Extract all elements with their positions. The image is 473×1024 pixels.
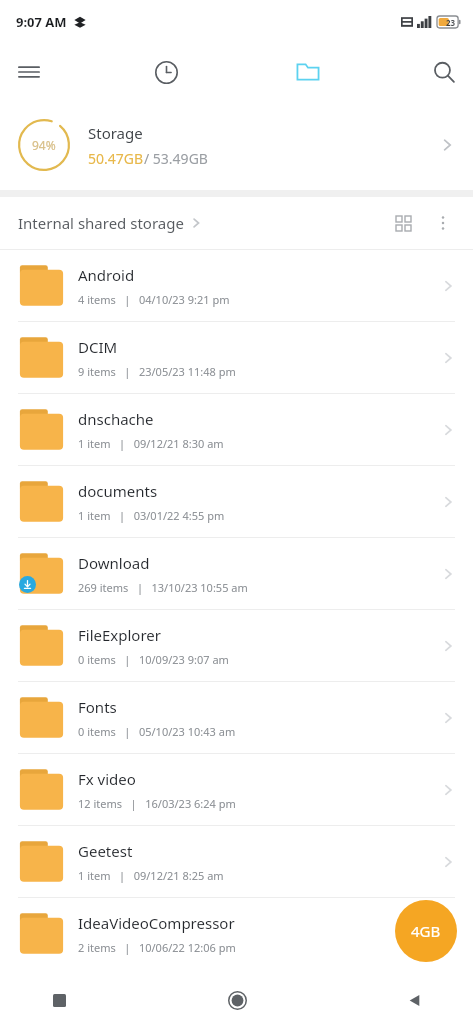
staticText: 1 item | 03/01/22 4:55 pm bbox=[78, 508, 225, 523]
staticText: Storage bbox=[88, 123, 143, 143]
button[interactable]: documents bbox=[0, 466, 473, 537]
staticText: Android bbox=[78, 265, 135, 285]
button[interactable]: Android bbox=[0, 250, 473, 321]
button[interactable]: DCIM bbox=[0, 322, 473, 393]
button[interactable]: IdeaVideoCompressor bbox=[0, 898, 473, 969]
staticText: 1 item | 09/12/21 8:30 am bbox=[78, 436, 224, 451]
staticText: Internal shared storage bbox=[18, 213, 184, 233]
staticText: DCIM bbox=[78, 337, 118, 357]
button[interactable]: More options bbox=[423, 203, 463, 243]
staticText: 23 bbox=[446, 17, 456, 28]
button[interactable]: Home bbox=[214, 977, 260, 1023]
staticText: 94% bbox=[32, 137, 56, 153]
button[interactable]: Fx video bbox=[0, 754, 473, 825]
button[interactable]: Geetest bbox=[0, 826, 473, 897]
staticText: IdeaVideoCompressor bbox=[78, 913, 235, 933]
staticText: 2 items | 10/06/22 12:06 pm bbox=[78, 940, 236, 955]
staticText: 1 item | 09/12/21 8:25 am bbox=[78, 868, 224, 883]
staticText: 12 items | 16/03/23 6:24 pm bbox=[78, 796, 236, 811]
staticText: Download bbox=[78, 553, 150, 573]
staticText: documents bbox=[78, 481, 158, 501]
staticText: Fonts bbox=[78, 697, 117, 717]
button[interactable]: dnschache bbox=[0, 394, 473, 465]
button[interactable]: Menu bbox=[8, 51, 50, 93]
staticText: 9:07 AM bbox=[16, 13, 67, 31]
button[interactable]: Recent bbox=[145, 51, 187, 93]
button[interactable]: Back bbox=[391, 977, 437, 1023]
staticText: 50.47GB bbox=[88, 149, 144, 168]
button[interactable]: Recents bbox=[36, 977, 82, 1023]
staticText: 0 items | 10/09/23 9:07 am bbox=[78, 652, 229, 667]
staticText: FileExplorer bbox=[78, 625, 161, 645]
button[interactable]: Fonts bbox=[0, 682, 473, 753]
button[interactable]: Files bbox=[287, 51, 329, 93]
staticText: dnschache bbox=[78, 409, 154, 429]
button[interactable]: Grid view bbox=[383, 203, 423, 243]
staticText: 4GB bbox=[411, 921, 441, 941]
staticText: 269 items | 13/10/23 10:55 am bbox=[78, 580, 248, 595]
button[interactable]: 4GB bbox=[395, 900, 457, 962]
button[interactable]: 94% bbox=[0, 100, 473, 190]
staticText: / 53.49GB bbox=[144, 149, 208, 168]
staticText: Geetest bbox=[78, 841, 133, 861]
staticText: 4 items | 04/10/23 9:21 pm bbox=[78, 292, 230, 307]
button[interactable]: Download bbox=[0, 538, 473, 609]
staticText: 9 items | 23/05/23 11:48 pm bbox=[78, 364, 236, 379]
staticText: 0 items | 05/10/23 10:43 am bbox=[78, 724, 236, 739]
button[interactable]: Search bbox=[423, 51, 465, 93]
button[interactable]: Internal shared storage bbox=[18, 213, 204, 233]
staticText: Fx video bbox=[78, 769, 136, 789]
button[interactable]: FileExplorer bbox=[0, 610, 473, 681]
